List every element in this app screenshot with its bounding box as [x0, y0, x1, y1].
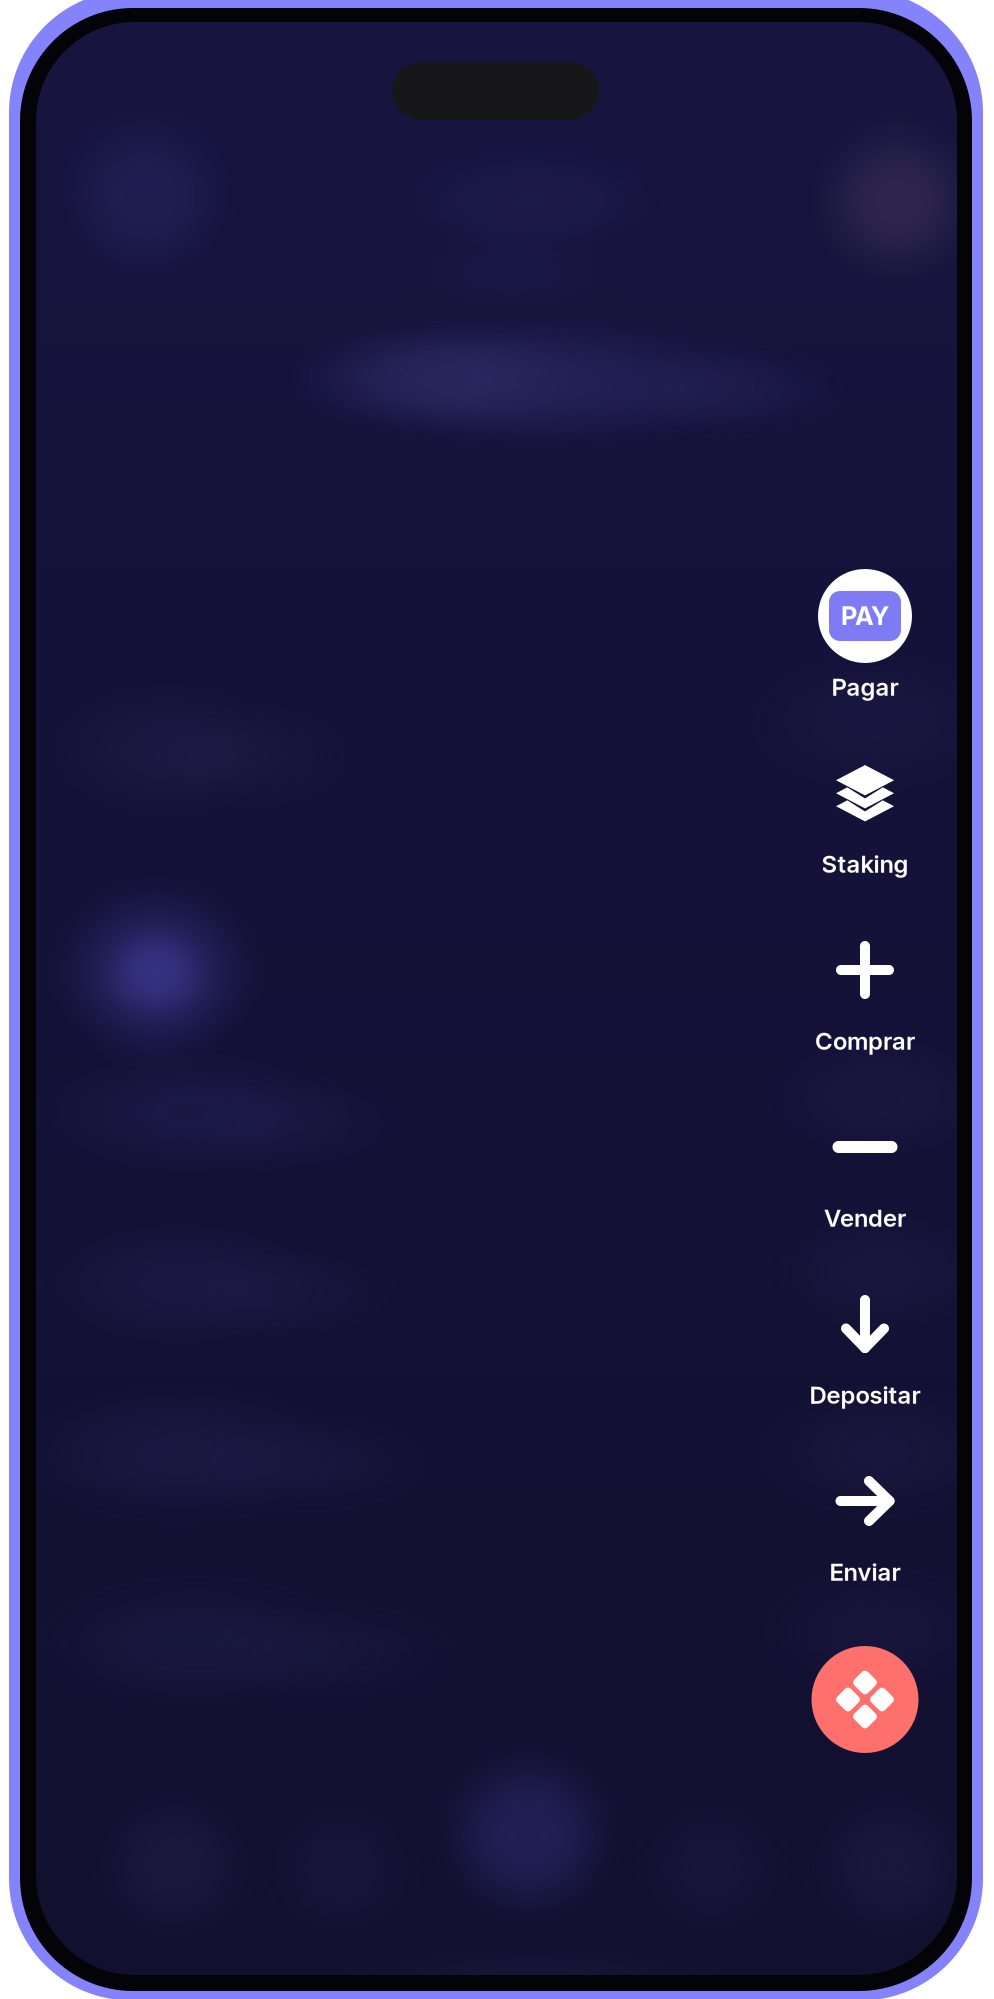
staticText: Comprar: [815, 1026, 915, 1055]
button[interactable]: Vender: [770, 1100, 960, 1242]
staticText: Staking: [821, 849, 908, 878]
staticText: PAY: [841, 601, 889, 631]
button[interactable]: Staking: [770, 746, 960, 888]
staticText: Enviar: [829, 1557, 900, 1586]
button[interactable]: Depositar: [770, 1277, 960, 1419]
staticText: Vender: [824, 1203, 906, 1232]
button[interactable]: Enviar: [770, 1454, 960, 1596]
button[interactable]: Comprar: [770, 923, 960, 1065]
staticText: Depositar: [809, 1380, 920, 1409]
button[interactable]: PAY: [770, 569, 960, 711]
button[interactable]: Close quick actions: [770, 1631, 960, 1738]
staticText: Pagar: [831, 672, 898, 701]
